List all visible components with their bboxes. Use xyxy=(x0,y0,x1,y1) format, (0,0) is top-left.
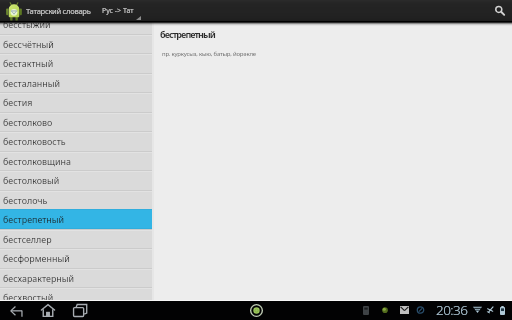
button[interactable]: бестолково xyxy=(0,112,152,132)
staticText: бестактный xyxy=(3,57,54,69)
staticText: бестолочь xyxy=(3,194,48,206)
staticText: 20:36 xyxy=(436,301,468,319)
staticText: бестрепетный xyxy=(160,28,215,40)
button[interactable]: бесхвостый xyxy=(0,287,152,300)
button[interactable]: бестолочь xyxy=(0,190,152,210)
button[interactable]: Recent apps xyxy=(68,301,92,320)
button[interactable]: бестолковость xyxy=(0,131,152,151)
staticText: бесформенный xyxy=(3,252,70,264)
button[interactable]: Рус -> Тат xyxy=(99,2,137,19)
staticText: бесталанный xyxy=(3,77,61,89)
staticText: бессчётный xyxy=(3,38,54,50)
staticText: бестселлер xyxy=(3,233,52,245)
button[interactable]: бессчётный xyxy=(0,34,152,54)
staticText: бестолковый xyxy=(3,174,60,186)
button[interactable]: Back xyxy=(4,301,28,320)
button[interactable]: бесталанный xyxy=(0,73,152,93)
button[interactable]: бестия xyxy=(0,92,152,112)
button[interactable]: бестрепетный xyxy=(0,209,152,229)
button[interactable]: бесстыжий xyxy=(0,22,152,34)
button[interactable]: бестселлер xyxy=(0,229,152,249)
button[interactable]: Home xyxy=(36,301,60,320)
button[interactable]: Search xyxy=(489,1,510,21)
staticText: бестолковость xyxy=(3,135,66,147)
button[interactable]: бесхарактерный xyxy=(0,268,152,288)
staticText: бестолковщина xyxy=(3,155,71,167)
staticText: бесстыжий xyxy=(3,22,51,30)
button[interactable]: бестолковый xyxy=(0,170,152,190)
staticText: бестрепетный xyxy=(3,213,65,225)
staticText: Рус -> Тат xyxy=(102,6,134,16)
button[interactable]: бестактный xyxy=(0,53,152,73)
button[interactable]: бесформенный xyxy=(0,248,152,268)
staticText: бесхвостый xyxy=(3,291,54,300)
staticText: бестия xyxy=(3,96,33,108)
staticText: бесхарактерный xyxy=(3,272,75,284)
staticText: бестолково xyxy=(3,116,53,128)
button[interactable]: бестолковщина xyxy=(0,151,152,171)
staticText: Татарский словарь xyxy=(26,6,91,16)
staticText: пр. куркусыз, кыю, батыр, йорәкле xyxy=(162,50,256,58)
